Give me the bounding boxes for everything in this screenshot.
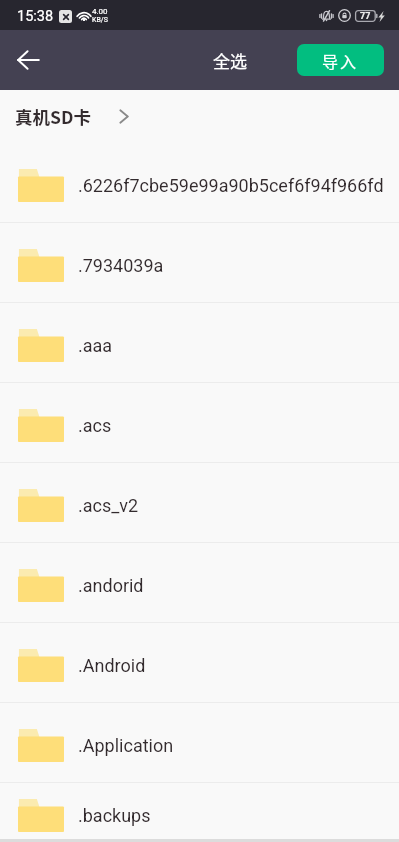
staticText: 15:38 [17, 8, 54, 25]
staticText: .andorid [78, 575, 144, 596]
button[interactable]: 导入 [297, 44, 384, 76]
staticText: .6226f7cbe59e99a90b5cef6f94f966fd [78, 175, 384, 196]
staticText: .backups [78, 805, 151, 826]
staticText: .acs_v2 [78, 495, 139, 516]
button[interactable]: .Application [0, 703, 399, 783]
button[interactable]: .7934039a [0, 223, 399, 303]
button[interactable]: .acs_v2 [0, 463, 399, 543]
staticText: KB/S [92, 16, 108, 24]
staticText: .Application [78, 735, 174, 756]
staticText: 全选 [213, 48, 247, 73]
button[interactable]: .6226f7cbe59e99a90b5cef6f94f966fd [0, 143, 399, 223]
button[interactable]: .Android [0, 623, 399, 703]
button[interactable]: .acs [0, 383, 399, 463]
button[interactable]: .andorid [0, 543, 399, 623]
staticText: 真机SD卡 [15, 104, 91, 129]
button[interactable]: 全选 [203, 40, 257, 81]
button[interactable]: .aaa [0, 303, 399, 383]
staticText: .aaa [78, 335, 113, 356]
staticText: 导入 [322, 49, 359, 72]
button[interactable]: Back [4, 36, 52, 84]
button[interactable]: .backups [0, 783, 399, 842]
staticText: .acs [78, 415, 112, 436]
staticText: .7934039a [78, 255, 164, 276]
staticText: .Android [78, 655, 146, 676]
staticText: 77 [360, 11, 371, 22]
button[interactable]: 真机SD卡 [12, 100, 132, 133]
staticText: 4.00 [92, 7, 108, 16]
